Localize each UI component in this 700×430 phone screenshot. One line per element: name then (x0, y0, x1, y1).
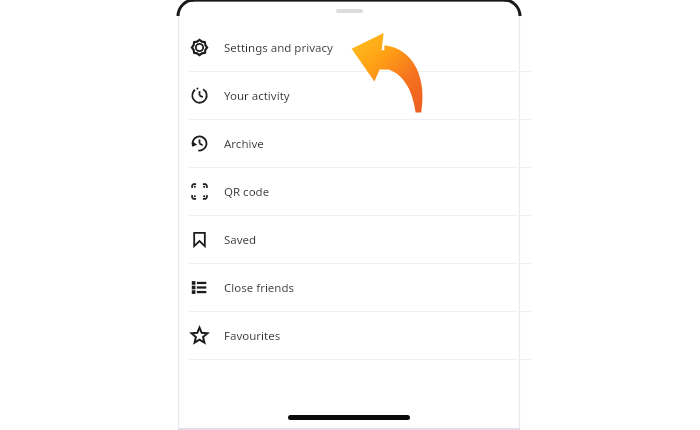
button[interactable]: Settings and privacy (178, 24, 520, 71)
staticText: QR code (224, 184, 270, 200)
other: Annotation arrow pointing to Settings an… (348, 31, 428, 113)
button[interactable]: Saved (178, 216, 520, 263)
button[interactable]: Favourites (178, 312, 520, 359)
staticText: Favourites (224, 328, 281, 344)
button[interactable]: QR code (178, 168, 520, 215)
button[interactable]: Close friends (178, 264, 520, 311)
staticText: Close friends (224, 280, 295, 296)
staticText: Saved (224, 232, 257, 248)
staticText: Settings and privacy (224, 40, 333, 56)
staticText: Archive (224, 136, 264, 152)
button[interactable]: Your activity (178, 72, 520, 119)
staticText: Your activity (224, 88, 290, 104)
button[interactable]: Archive (178, 120, 520, 167)
